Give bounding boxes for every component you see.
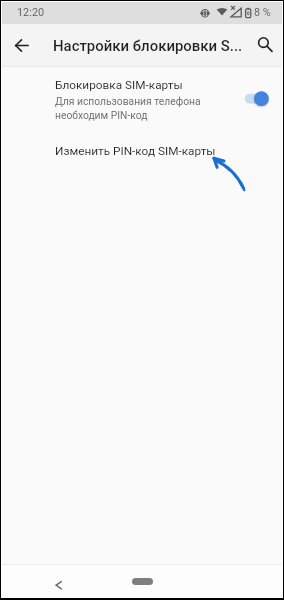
button[interactable]: Back [6, 29, 38, 61]
staticText: 8 % [254, 6, 271, 19]
staticText: 12:20 [17, 6, 45, 19]
button[interactable]: Home [132, 578, 153, 585]
button[interactable]: Изменить PIN-код SIM-карты [2, 125, 282, 163]
button[interactable]: Back [48, 569, 72, 593]
button[interactable]: SIM lock toggle [242, 87, 274, 111]
staticText: Блокировка SIM-карты [55, 78, 183, 92]
staticText: Для использования телефона необходим PIN… [55, 95, 201, 122]
staticText: Изменить PIN-код SIM-карты [55, 144, 216, 158]
staticText: Настройки блокировки S... [53, 37, 249, 54]
button[interactable]: Блокировка SIM-карты [2, 67, 282, 125]
button[interactable]: Search [250, 30, 280, 60]
